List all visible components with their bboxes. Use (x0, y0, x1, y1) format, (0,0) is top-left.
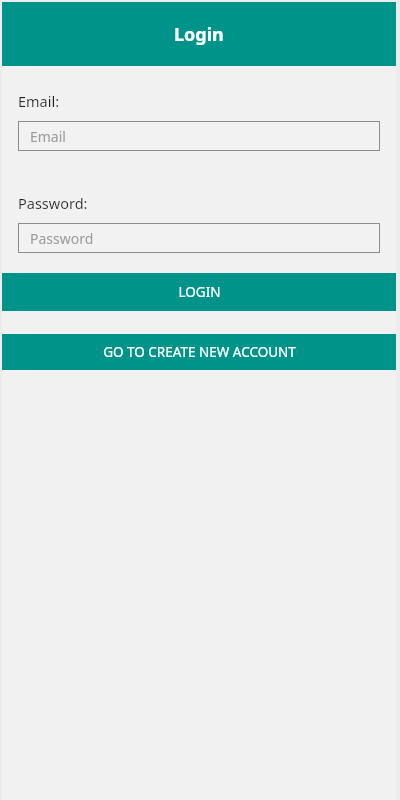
staticText: Login (174, 22, 224, 47)
button[interactable]: LOGIN (2, 273, 396, 311)
staticText: LOGIN (178, 283, 221, 301)
staticText: Email: (18, 91, 60, 111)
staticText: Email (30, 127, 66, 146)
staticText: Password: (18, 193, 88, 213)
staticText: GO TO CREATE NEW ACCOUNT (103, 343, 296, 361)
button[interactable]: Email (18, 121, 380, 151)
button[interactable]: Password (18, 223, 380, 253)
staticText: Password (30, 229, 94, 248)
button[interactable]: GO TO CREATE NEW ACCOUNT (2, 334, 396, 370)
